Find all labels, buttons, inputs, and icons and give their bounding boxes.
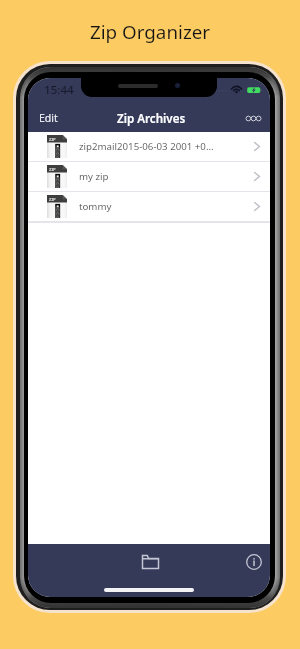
button[interactable]: ZIP (28, 132, 270, 161)
staticText: Zip Organizer (90, 19, 211, 45)
button[interactable]: Folders (134, 549, 166, 575)
staticText: ZIP (49, 137, 56, 143)
button[interactable]: More options (236, 109, 270, 128)
staticText: zip2mail2015-06-03 2001 +0... (79, 140, 249, 153)
staticText: ZIP (49, 197, 56, 203)
button[interactable]: ZIP (28, 192, 270, 221)
staticText: my zip (79, 170, 249, 183)
staticText: 15:44 (44, 82, 74, 98)
button[interactable]: Info (241, 549, 267, 575)
button[interactable]: Edit (28, 106, 66, 130)
staticText: ZIP (49, 167, 56, 173)
staticText: Edit (39, 111, 58, 125)
staticText: Zip Archives (117, 111, 186, 127)
button[interactable]: ZIP (28, 162, 270, 191)
staticText: tommy (79, 200, 249, 213)
